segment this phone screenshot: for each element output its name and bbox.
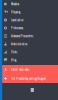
button[interactable]: Collapse menu <box>24 88 34 100</box>
staticText: Set PrestaShop settings/Support <box>11 76 46 81</box>
staticText: Advanced Parameters <box>11 34 33 38</box>
staticText: Administration <box>11 42 27 46</box>
button[interactable]: Preferences <box>0 24 58 32</box>
button[interactable]: Advanced Parameters <box>0 32 58 40</box>
staticText: Localization <box>11 18 23 22</box>
staticText: Blog <box>11 58 16 62</box>
button[interactable]: Administration <box>0 40 58 48</box>
button[interactable]: Blog <box>0 56 58 64</box>
button[interactable]: Localization <box>0 16 58 24</box>
staticText: Preferences <box>11 26 23 30</box>
staticText: Modules <box>11 2 19 6</box>
button[interactable]: Install demo data <box>0 65 58 74</box>
button[interactable]: Set PrestaShop settings/Support <box>0 74 58 83</box>
button[interactable]: Modules <box>0 0 58 8</box>
button[interactable]: Shipping <box>0 8 58 16</box>
staticText: Install demo data <box>11 67 29 72</box>
staticText: Stats <box>11 50 17 54</box>
staticText: Shipping <box>11 10 20 14</box>
button[interactable]: Stats <box>0 48 58 56</box>
